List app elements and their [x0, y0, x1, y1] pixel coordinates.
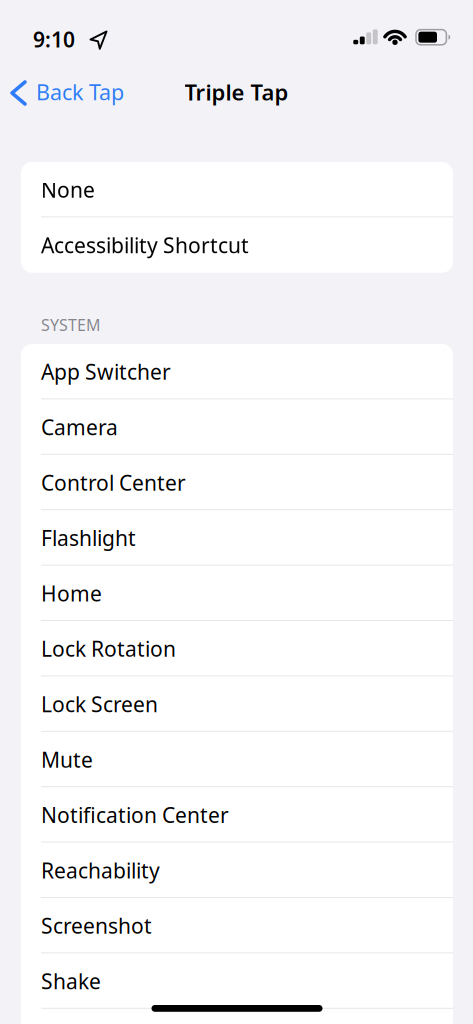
- button[interactable]: Flashlight: [21, 510, 453, 566]
- button[interactable]: Back Tap: [0, 70, 473, 114]
- button[interactable]: Reachability: [21, 843, 453, 898]
- button[interactable]: Screenshot: [21, 898, 453, 953]
- staticText: Flashlight: [41, 524, 136, 552]
- staticText: Triple Tap: [184, 77, 288, 107]
- staticText: Mute: [41, 745, 93, 774]
- button[interactable]: Home: [21, 566, 453, 621]
- staticText: Home: [41, 579, 102, 608]
- button[interactable]: Control Center: [21, 455, 453, 510]
- staticText: Camera: [41, 413, 118, 441]
- button[interactable]: Lock Rotation: [21, 621, 453, 676]
- staticText: 9:10: [33, 25, 75, 54]
- staticText: Lock Screen: [41, 690, 158, 718]
- staticText: Notification Center: [41, 801, 229, 829]
- staticText: None: [41, 175, 95, 204]
- staticText: Screenshot: [41, 911, 152, 940]
- button[interactable]: Shake: [21, 953, 453, 1009]
- staticText: Back Tap: [36, 77, 124, 107]
- button[interactable]: Lock Screen: [21, 676, 453, 732]
- button[interactable]: Accessibility Shortcut: [21, 217, 453, 273]
- staticText: Control Center: [41, 468, 186, 497]
- staticText: Shake: [41, 967, 101, 995]
- button[interactable]: Camera: [21, 399, 453, 455]
- button[interactable]: Mute: [21, 732, 453, 787]
- staticText: Accessibility Shortcut: [41, 231, 249, 259]
- staticText: Lock Rotation: [41, 634, 176, 663]
- staticText: SYSTEM: [41, 314, 101, 336]
- button[interactable]: Notification Center: [21, 787, 453, 843]
- staticText: Reachability: [41, 856, 160, 885]
- button[interactable]: App Switcher: [21, 344, 453, 399]
- button[interactable]: None: [21, 162, 453, 217]
- staticText: App Switcher: [41, 357, 171, 386]
